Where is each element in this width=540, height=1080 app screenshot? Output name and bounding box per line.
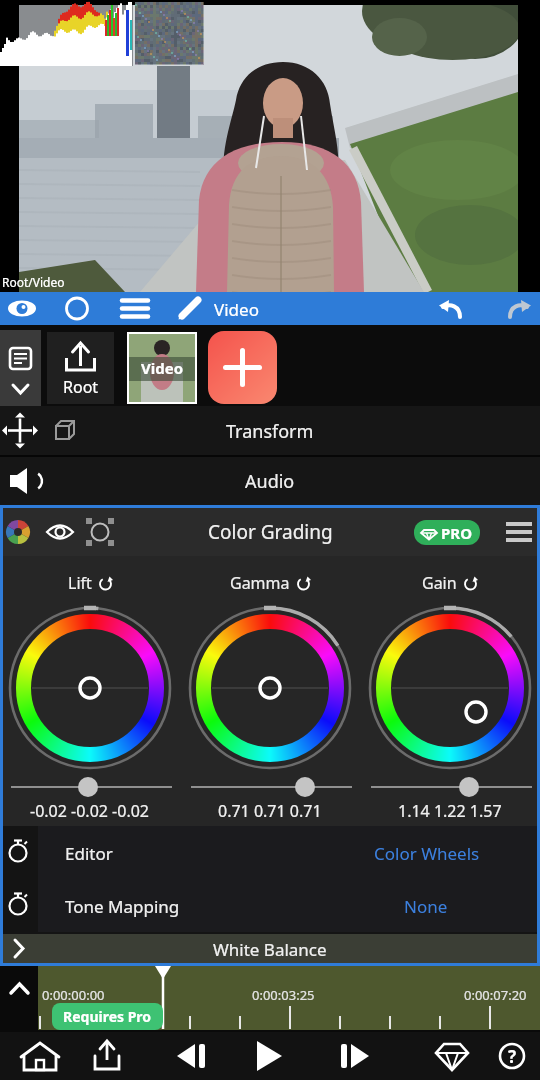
staticText: Lift xyxy=(68,572,92,594)
staticText: ? xyxy=(508,1045,517,1068)
staticText: Transform xyxy=(226,419,314,444)
button[interactable]: Gain xyxy=(370,569,530,597)
staticText: Color Grading xyxy=(208,519,333,545)
button[interactable] xyxy=(432,1032,472,1080)
staticText: White Balance xyxy=(213,938,327,961)
button[interactable] xyxy=(87,1032,127,1080)
staticText: Editor xyxy=(65,842,113,865)
button[interactable] xyxy=(432,292,472,325)
staticText: 0:00:03:25 xyxy=(252,986,315,1004)
button[interactable] xyxy=(20,1032,60,1080)
staticText: -0.02 -0.02 -0.02 xyxy=(30,800,150,822)
button[interactable] xyxy=(172,1032,212,1080)
staticText: Root/Video xyxy=(2,274,65,290)
button[interactable] xyxy=(498,292,538,325)
button[interactable] xyxy=(57,292,97,325)
staticText: Tone Mapping xyxy=(65,895,180,918)
staticText: Requires Pro xyxy=(63,1007,152,1026)
button[interactable]: Editor xyxy=(38,826,537,879)
button[interactable]: ? xyxy=(492,1032,532,1080)
staticText: 0.71 0.71 0.71 xyxy=(218,800,322,822)
staticText: Audio xyxy=(245,469,295,494)
button[interactable] xyxy=(208,331,277,404)
button[interactable]: Lift xyxy=(10,569,170,597)
button[interactable]: White Balance xyxy=(3,934,537,963)
button[interactable]: PRO xyxy=(414,520,480,545)
button[interactable] xyxy=(4,292,44,325)
button[interactable]: Transform xyxy=(0,406,540,455)
staticText: 0:00:07:20 xyxy=(464,986,527,1004)
button[interactable] xyxy=(0,330,41,406)
button[interactable]: Audio xyxy=(0,457,540,505)
button[interactable]: Video xyxy=(172,292,262,325)
button[interactable] xyxy=(334,1032,374,1080)
staticText: None xyxy=(404,895,448,918)
button[interactable]: Tone Mapping xyxy=(38,879,537,932)
staticText: Video xyxy=(141,358,184,378)
staticText: Video xyxy=(214,298,259,321)
staticText: 1.14 1.22 1.57 xyxy=(398,800,502,822)
staticText: Color Wheels xyxy=(374,842,480,865)
button[interactable] xyxy=(248,1032,288,1080)
staticText: Root xyxy=(63,376,99,398)
button[interactable]: Root xyxy=(47,332,114,404)
staticText: Gamma xyxy=(230,572,290,594)
button[interactable]: Requires Pro xyxy=(52,1003,163,1030)
button[interactable]: Video xyxy=(127,332,197,404)
staticText: 0:00:00:00 xyxy=(42,986,105,1004)
button[interactable]: Gamma xyxy=(190,569,350,597)
staticText: PRO xyxy=(441,523,473,543)
staticText: Gain xyxy=(422,572,457,594)
button[interactable] xyxy=(115,292,155,325)
